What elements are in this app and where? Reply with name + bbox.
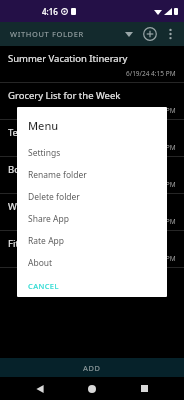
staticText: Share App (28, 213, 69, 225)
staticText: Book Recommendations (8, 163, 118, 176)
button[interactable]: Grocery List for the Week (0, 83, 184, 120)
staticText: ADD (83, 363, 101, 373)
button[interactable]: Back (28, 377, 52, 400)
staticText: 6/19/24 4:13 PM (126, 143, 176, 152)
button[interactable]: Home (80, 377, 104, 400)
staticText: 6/19/24 4:12 PM (126, 180, 176, 189)
staticText: WITHOUT FOLDER (10, 29, 84, 39)
button[interactable]: ADD (0, 358, 184, 377)
button[interactable]: Rate App (17, 230, 167, 252)
button[interactable]: Recent apps (132, 377, 156, 400)
button[interactable]: More options (160, 24, 180, 44)
staticText: 6/19/24 4:10 PM (126, 254, 176, 263)
staticText: Delete folder (28, 191, 80, 203)
staticText: Team Meeting Notes (8, 126, 101, 139)
button[interactable]: Fitness Goals Tracker (0, 231, 184, 268)
staticText: Summer Vacation Itinerary (8, 52, 128, 65)
staticText: Settings (28, 147, 61, 159)
staticText: Grocery List for the Week (8, 89, 121, 102)
button[interactable]: Select folder (120, 25, 138, 43)
staticText: 4:16 (42, 6, 58, 17)
staticText: Rate App (28, 235, 65, 247)
button[interactable]: Add note (140, 24, 160, 44)
button[interactable]: Delete folder (17, 186, 167, 208)
button[interactable]: WITHOUT FOLDER (0, 29, 120, 39)
button[interactable]: Settings (17, 142, 167, 164)
staticText: CANCEL (28, 281, 59, 291)
staticText: Rename folder (28, 169, 87, 181)
button[interactable]: Rename folder (17, 164, 167, 186)
staticText: Fitness Goals Tracker (8, 237, 102, 250)
button[interactable]: Weekend Project Ideas (0, 194, 184, 231)
button[interactable]: CANCEL (17, 278, 167, 297)
staticText: Menu (28, 118, 59, 133)
button[interactable]: Summer Vacation Itinerary (0, 46, 184, 83)
button[interactable]: Team Meeting Notes (0, 120, 184, 157)
staticText: Weekend Project Ideas (8, 200, 110, 213)
staticText: About (28, 257, 53, 269)
staticText: 6/19/24 4:15 PM (126, 69, 176, 78)
button[interactable]: Book Recommendations (0, 157, 184, 194)
staticText: 6/19/24 4:14 PM (126, 106, 176, 115)
button[interactable]: About (17, 252, 167, 274)
staticText: 6/19/24 4:11 PM (126, 217, 176, 226)
button[interactable]: Share App (17, 208, 167, 230)
